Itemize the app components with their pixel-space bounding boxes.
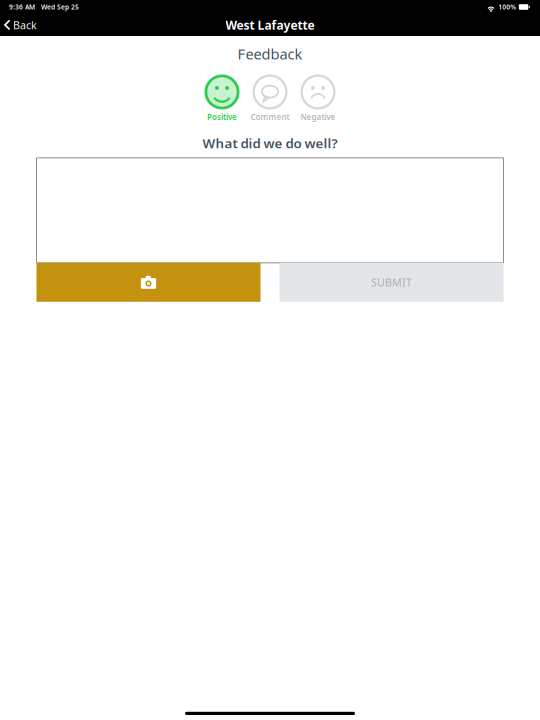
- staticText: 9:36 AM: [9, 3, 35, 11]
- button[interactable]: Comment: [246, 74, 294, 122]
- button[interactable]: SUBMIT: [279, 263, 503, 302]
- staticText: Back: [13, 18, 37, 32]
- staticText: West Lafayette: [225, 17, 314, 33]
- staticText: What did we do well?: [202, 134, 337, 152]
- button[interactable]: Attach photo: [36, 263, 260, 302]
- staticText: Feedback: [237, 44, 302, 63]
- staticText: 100%: [498, 3, 516, 11]
- staticText: Positive: [207, 111, 237, 122]
- staticText: Comment: [250, 111, 289, 122]
- button[interactable]: Negative: [294, 74, 342, 122]
- button[interactable]: Back: [0, 14, 44, 36]
- button[interactable]: Positive: [198, 74, 246, 122]
- staticText: Wed Sep 25: [41, 3, 79, 11]
- staticText: SUBMIT: [371, 275, 412, 289]
- staticText: Negative: [300, 111, 335, 122]
